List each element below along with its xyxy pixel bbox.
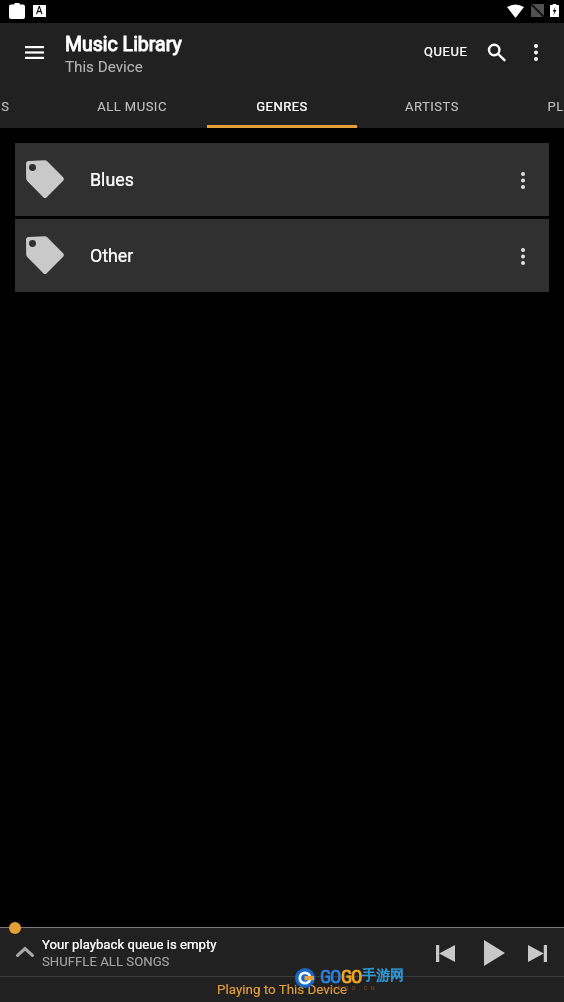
staticText: Music Library: [65, 33, 182, 56]
staticText: GENRES: [256, 99, 308, 114]
button[interactable]: ARTISTS: [357, 88, 507, 126]
button[interactable]: Expand player: [7, 934, 43, 970]
button[interactable]: Playing to This Device: [0, 977, 564, 1002]
staticText: This Device: [65, 58, 143, 76]
staticText: QUEUE: [424, 44, 468, 59]
staticText: Other: [90, 245, 134, 266]
button[interactable]: Expand player: [0, 927, 564, 976]
staticText: G O G O . C N: [330, 984, 376, 991]
button[interactable]: ALL MUSIC: [57, 88, 207, 126]
button[interactable]: More options: [518, 34, 554, 70]
button[interactable]: More options for Blues: [501, 158, 545, 202]
button[interactable]: Search: [476, 34, 512, 70]
button[interactable]: Next track: [517, 933, 557, 973]
staticText: Blues: [90, 169, 134, 190]
staticText: Your playback queue is empty: [42, 937, 217, 952]
button[interactable]: Play: [470, 929, 518, 977]
button[interactable]: QUEUE: [414, 29, 478, 73]
staticText: ALBUMS: [0, 99, 10, 114]
button[interactable]: Previous track: [425, 933, 465, 973]
staticText: Playing to This Device: [217, 982, 348, 998]
staticText: 手游网: [362, 967, 404, 985]
button[interactable]: Other: [15, 219, 549, 292]
button[interactable]: More options for Other: [501, 234, 545, 278]
staticText: SHUFFLE ALL SONGS: [42, 954, 170, 969]
button[interactable]: Blues: [15, 143, 549, 216]
staticText: PLAYLISTS: [547, 99, 564, 114]
staticText: ALL MUSIC: [97, 99, 167, 114]
staticText: GO: [341, 965, 362, 987]
button[interactable]: PLAYLISTS: [507, 88, 564, 126]
staticText: ARTISTS: [405, 99, 459, 114]
button[interactable]: GENRES: [207, 88, 357, 126]
button[interactable]: ALBUMS: [0, 88, 57, 126]
staticText: GO: [320, 965, 341, 987]
staticText: A: [36, 5, 43, 17]
button[interactable]: Open navigation drawer: [14, 32, 54, 72]
